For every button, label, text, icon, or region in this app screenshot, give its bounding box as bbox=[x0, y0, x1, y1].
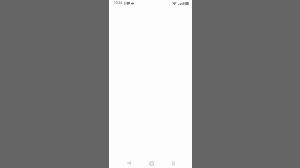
button[interactable]: Recent apps bbox=[162, 158, 184, 168]
staticText: 10:24 bbox=[114, 1, 123, 5]
button[interactable]: Home bbox=[140, 158, 162, 168]
button[interactable]: Back bbox=[118, 158, 140, 168]
